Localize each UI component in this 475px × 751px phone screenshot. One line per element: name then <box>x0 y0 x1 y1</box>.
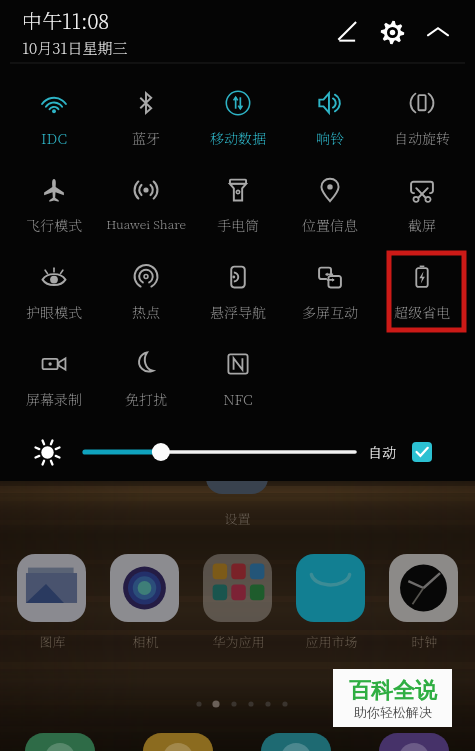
button[interactable]: Brightness <box>82 439 357 465</box>
button[interactable]: 响铃 <box>284 64 376 151</box>
button[interactable]: 移动数据 <box>192 64 284 151</box>
staticText: 华为应用 <box>212 632 265 651</box>
button[interactable]: 热点 <box>100 238 192 325</box>
staticText: 多屏互动 <box>302 302 358 322</box>
staticText: 手电筒 <box>217 215 259 235</box>
staticText: 超级省电 <box>394 302 450 322</box>
button[interactable]: 悬浮导航 <box>192 238 284 325</box>
button[interactable] <box>110 554 179 622</box>
staticText: 热点 <box>132 302 160 322</box>
staticText: 飞行模式 <box>26 215 82 235</box>
staticText: 截屏 <box>408 215 436 235</box>
button[interactable]: 屏幕录制 <box>7 325 100 412</box>
staticText: 自动 <box>368 442 396 462</box>
button[interactable]: 飞行模式 <box>7 151 100 238</box>
button[interactable]: 超级省电 <box>376 238 468 325</box>
staticText: 设置 <box>224 509 251 528</box>
staticText: 移动数据 <box>210 128 266 148</box>
staticText: 自动旋转 <box>394 128 450 148</box>
button[interactable] <box>296 554 365 622</box>
staticText: 响铃 <box>316 128 344 148</box>
staticText: 相机 <box>132 632 159 651</box>
staticText: 10月31日星期三 <box>22 37 128 59</box>
button[interactable]: Collapse <box>415 9 461 55</box>
staticText: 蓝牙 <box>132 128 160 148</box>
button[interactable]: Brightness mode <box>32 437 62 467</box>
button[interactable]: 自动 <box>368 439 428 465</box>
button[interactable]: 自动旋转 <box>376 64 468 151</box>
button[interactable]: 护眼模式 <box>7 238 100 325</box>
staticText: NFC <box>223 389 253 409</box>
staticText: 免打扰 <box>125 389 167 409</box>
staticText: 助你轻松解决 <box>354 704 432 720</box>
button[interactable]: IDC <box>7 64 100 151</box>
button[interactable] <box>17 554 86 622</box>
button[interactable]: NFC <box>192 325 284 412</box>
button[interactable]: 位置信息 <box>284 151 376 238</box>
button[interactable] <box>389 554 458 622</box>
button[interactable]: 多屏互动 <box>284 238 376 325</box>
button[interactable] <box>261 733 331 751</box>
staticText: IDC <box>41 128 67 148</box>
staticText: 时钟 <box>411 632 438 651</box>
staticText: 图库 <box>39 632 66 651</box>
button[interactable]: 蓝牙 <box>100 64 192 151</box>
button[interactable] <box>25 733 95 751</box>
button[interactable] <box>379 733 449 751</box>
staticText: 位置信息 <box>302 215 358 235</box>
button[interactable]: 免打扰 <box>100 325 192 412</box>
staticText: 应用市场 <box>305 632 358 651</box>
button[interactable]: 截屏 <box>376 151 468 238</box>
staticText: 百科全说 <box>349 677 437 705</box>
staticText: 中午11:08 <box>22 6 110 35</box>
staticText: 悬浮导航 <box>210 302 266 322</box>
staticText: Huawei Share <box>106 215 186 232</box>
button[interactable] <box>203 554 272 622</box>
button[interactable]: 手电筒 <box>192 151 284 238</box>
staticText: 护眼模式 <box>26 302 82 322</box>
button[interactable]: Huawei Share <box>100 151 192 238</box>
button[interactable]: Edit <box>323 9 369 55</box>
staticText: 屏幕录制 <box>26 389 82 409</box>
button[interactable]: Settings <box>369 9 415 55</box>
button[interactable] <box>143 733 213 751</box>
